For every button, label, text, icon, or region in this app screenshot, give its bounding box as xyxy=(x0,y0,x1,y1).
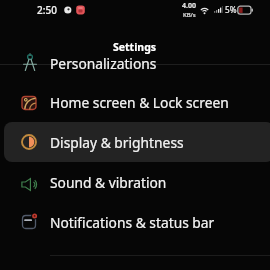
button[interactable]: Display & brightness xyxy=(0,124,270,160)
staticText: 2:50 xyxy=(37,3,57,17)
button[interactable]: Sound & vibration xyxy=(0,164,270,200)
staticText: Notifications & status bar xyxy=(50,213,215,232)
staticText: Settings xyxy=(113,40,157,54)
button[interactable]: Home screen & Lock screen xyxy=(0,84,270,120)
staticText: 4.00 xyxy=(182,1,196,11)
button[interactable]: Notifications & status bar xyxy=(0,204,270,240)
button[interactable]: Personalizations xyxy=(0,45,270,81)
staticText: 5% xyxy=(225,4,237,15)
staticText: Display & brightness xyxy=(50,133,184,152)
staticText: Sound & vibration xyxy=(50,173,167,192)
staticText: Home screen & Lock screen xyxy=(50,93,229,112)
staticText: Personalizations xyxy=(50,54,157,73)
staticText: KB/s xyxy=(183,11,196,19)
